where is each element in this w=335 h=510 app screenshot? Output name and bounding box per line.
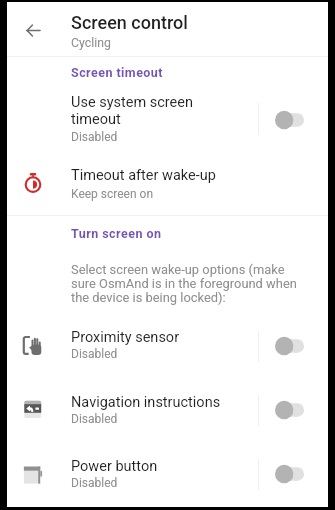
staticText: Timeout after wake-up: [71, 167, 216, 184]
button[interactable]: Toggle: [269, 331, 310, 361]
staticText: Keep screen on: [71, 187, 154, 201]
button[interactable]: Back: [14, 11, 52, 49]
staticText: Turn screen on: [71, 226, 162, 241]
button[interactable]: [7, 379, 328, 442]
button[interactable]: Toggle: [269, 459, 310, 489]
button[interactable]: Toggle: [269, 395, 310, 425]
button[interactable]: [7, 101, 328, 148]
staticText: Cycling: [71, 36, 111, 50]
staticText: Disabled: [71, 412, 118, 426]
staticText: Navigation instructions: [71, 394, 221, 411]
button[interactable]: Toggle: [269, 105, 310, 135]
button[interactable]: [7, 315, 328, 378]
staticText: Disabled: [71, 347, 118, 361]
button[interactable]: [7, 155, 328, 206]
staticText: timeout: [71, 111, 121, 128]
staticText: Use system screen: [71, 94, 193, 111]
staticText: Proximity sensor: [71, 329, 180, 346]
staticText: Select screen wake-up options (make sure…: [71, 262, 309, 305]
staticText: Screen timeout: [71, 65, 163, 80]
staticText: Disabled: [71, 476, 118, 490]
staticText: Screen control: [71, 12, 188, 33]
button[interactable]: [7, 443, 328, 506]
staticText: Disabled: [71, 130, 118, 144]
staticText: Power button: [71, 458, 158, 475]
